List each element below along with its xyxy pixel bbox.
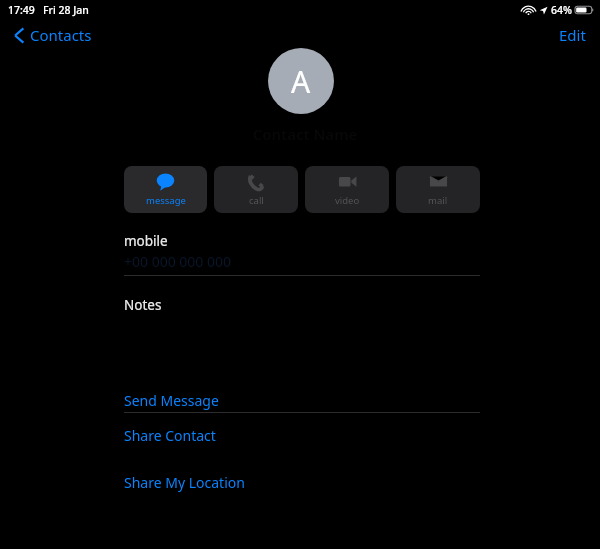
staticText: mail — [428, 194, 448, 207]
button[interactable]: video — [305, 166, 389, 213]
button[interactable]: Contacts — [14, 22, 92, 48]
staticText: Contacts — [30, 25, 92, 45]
staticText: Share My Location — [124, 473, 245, 492]
staticText: 64% — [551, 3, 572, 17]
button[interactable]: Send Message — [124, 388, 480, 412]
button[interactable]: call — [214, 166, 298, 213]
button[interactable]: Share Contact — [124, 423, 480, 447]
button[interactable]: message — [124, 166, 207, 213]
staticText: 17:49 — [8, 3, 35, 17]
button[interactable]: Edit — [555, 22, 590, 48]
staticText: Notes — [124, 296, 162, 314]
button[interactable]: Share My Location — [124, 470, 480, 494]
button[interactable]: mobile — [124, 232, 480, 271]
staticText: Share Contact — [124, 426, 216, 445]
staticText: mobile — [124, 232, 168, 250]
staticText: +00 000 000 000 — [124, 252, 232, 271]
staticText: message — [146, 194, 186, 207]
staticText: A — [291, 61, 311, 102]
button[interactable]: mail — [396, 166, 480, 213]
staticText: Send Message — [124, 391, 219, 410]
staticText: Fri 28 Jan — [43, 3, 89, 17]
staticText: call — [249, 194, 264, 207]
staticText: Edit — [559, 25, 586, 45]
staticText: video — [335, 194, 360, 207]
